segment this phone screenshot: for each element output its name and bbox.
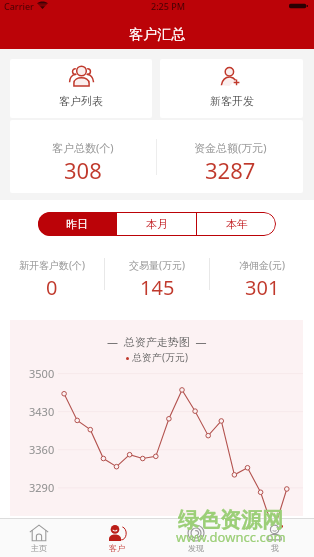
staticText: 3360 xyxy=(29,442,55,457)
staticText: 145 xyxy=(140,274,175,301)
staticText: 昨日 xyxy=(66,217,88,231)
button[interactable]: 本月 xyxy=(117,212,196,236)
button[interactable]: 本年 xyxy=(197,212,276,236)
staticText: Carrier xyxy=(4,0,34,12)
staticText: 资金总额(万元) xyxy=(194,140,267,155)
staticText: 3500 xyxy=(29,366,55,381)
staticText: 2:25 PM xyxy=(151,0,185,12)
staticText: 我 xyxy=(271,543,279,553)
button[interactable]: Customers xyxy=(78,519,156,557)
staticText: 3290 xyxy=(29,480,55,495)
button[interactable]: Home xyxy=(0,519,78,557)
staticText: 主页 xyxy=(31,543,47,553)
staticText: 3287 xyxy=(205,155,256,185)
staticText: 308 xyxy=(64,155,102,185)
staticText: 客户总数(个) xyxy=(52,140,114,155)
staticText: 0 xyxy=(46,274,58,301)
button[interactable]: 客户列表 xyxy=(10,59,152,118)
staticText: 净佣金(元) xyxy=(239,258,285,272)
staticText: 客户 xyxy=(109,543,125,553)
button[interactable]: 新客开发 xyxy=(160,59,303,118)
staticText: 新开客户数(个) xyxy=(19,258,85,272)
staticText: 客户列表 xyxy=(59,94,103,108)
staticText: 交易量(万元) xyxy=(129,258,185,272)
staticText: 本月 xyxy=(146,217,168,231)
staticText: 客户汇总 xyxy=(129,26,185,44)
staticText: www.downcc.com xyxy=(176,528,286,546)
button[interactable]: Me xyxy=(235,519,314,557)
staticText: 新客开发 xyxy=(210,94,254,108)
staticText: 绿色资源网 xyxy=(178,507,283,533)
staticText: 发现 xyxy=(188,543,204,553)
staticText: 本年 xyxy=(226,217,248,231)
staticText: 总资产(万元) xyxy=(132,350,188,364)
button[interactable]: Discover xyxy=(156,519,235,557)
staticText: 3430 xyxy=(29,404,55,419)
button[interactable]: 昨日 xyxy=(38,212,116,236)
staticText: — 总资产走势图 — xyxy=(107,334,207,349)
staticText: 301 xyxy=(245,274,280,301)
